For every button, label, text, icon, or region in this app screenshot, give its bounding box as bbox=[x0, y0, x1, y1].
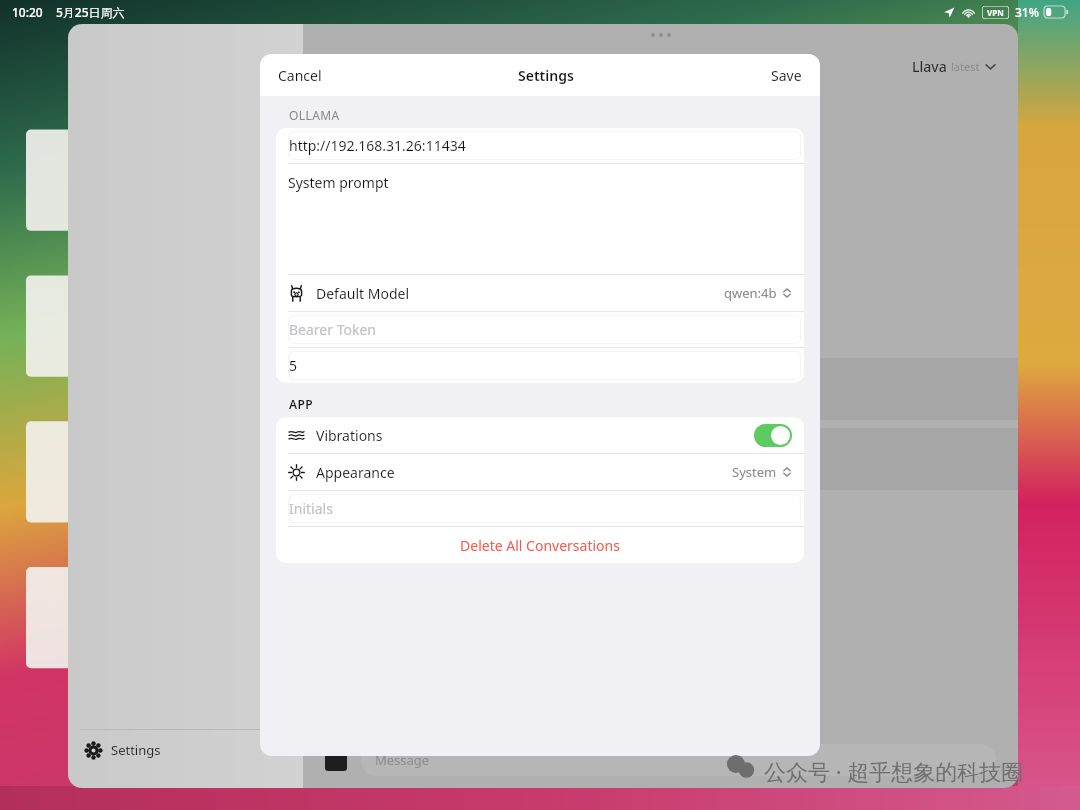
button[interactable]: Give me 10 gift ideas for best friend bbox=[303, 358, 1018, 420]
button[interactable]: Save bbox=[769, 60, 804, 91]
staticText: Bearer Token bbox=[289, 320, 376, 339]
staticText: System prompt bbox=[288, 173, 389, 192]
staticText: Message bbox=[375, 751, 430, 769]
button[interactable]: Message bbox=[361, 744, 996, 776]
staticText: Llava bbox=[912, 57, 947, 76]
staticText: 5 bbox=[289, 356, 298, 375]
button[interactable]: http://192.168.31.26:11434 bbox=[279, 131, 801, 160]
staticText: Delete All Conversations bbox=[460, 536, 620, 555]
staticText: Initials bbox=[289, 499, 333, 518]
button[interactable]: Vibrations bbox=[276, 417, 804, 453]
staticText: 5月25日周六 bbox=[56, 4, 125, 20]
button[interactable]: Appearance bbox=[276, 454, 804, 490]
button[interactable]: 5 bbox=[279, 351, 801, 380]
staticText: Default Model bbox=[316, 284, 410, 303]
button[interactable]: Vibrations on bbox=[754, 424, 792, 447]
staticText: Cancel bbox=[278, 66, 322, 85]
button[interactable]: Initials bbox=[279, 494, 801, 523]
staticText: Let's get started bbox=[343, 236, 621, 282]
staticText: Appearance bbox=[316, 463, 395, 482]
staticText: OLLAMA bbox=[289, 107, 340, 123]
button[interactable]: Settings bbox=[68, 730, 303, 770]
staticText: Save bbox=[771, 66, 802, 85]
staticText: Vibrations bbox=[316, 426, 383, 445]
staticText: 10:20 bbox=[12, 4, 43, 20]
staticText: How may I help you today? bbox=[343, 300, 622, 330]
button[interactable]: System prompt bbox=[276, 164, 804, 274]
staticText: System bbox=[732, 463, 777, 481]
staticText: latest bbox=[951, 59, 980, 74]
button[interactable]: How to center div in HTML? bbox=[303, 428, 1018, 490]
button[interactable]: Default Model bbox=[276, 275, 804, 311]
staticText: Settings bbox=[518, 66, 574, 85]
staticText: Give me 10 gift ideas for best friend bbox=[343, 380, 578, 399]
staticText: VPN bbox=[987, 7, 1004, 18]
button[interactable]: Llava bbox=[912, 57, 996, 76]
button[interactable]: Delete All Conversations bbox=[276, 527, 804, 563]
button[interactable]: Attach photo bbox=[325, 749, 347, 771]
button[interactable]: Cancel bbox=[276, 60, 324, 91]
staticText: http://192.168.31.26:11434 bbox=[289, 136, 466, 155]
staticText: qwen:4b bbox=[724, 284, 777, 302]
staticText: APP bbox=[289, 396, 314, 412]
staticText: Settings bbox=[111, 741, 161, 759]
staticText: 公众号 · 超乎想象的科技圈 bbox=[764, 756, 1024, 786]
staticText: How to center div in HTML? bbox=[343, 450, 523, 469]
button[interactable]: Bearer Token bbox=[279, 315, 801, 344]
staticText: 31% bbox=[1015, 4, 1039, 20]
